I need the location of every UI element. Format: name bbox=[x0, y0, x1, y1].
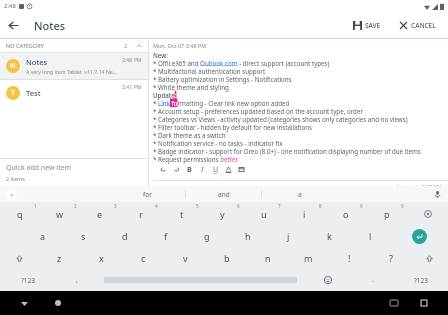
staticText: Notes bbox=[26, 57, 48, 67]
staticText: h bbox=[245, 230, 251, 242]
staticText: 5 bbox=[196, 203, 199, 209]
button[interactable]: g bbox=[186, 225, 227, 247]
button[interactable]: ? bbox=[370, 247, 411, 269]
staticText: Quick add new item bbox=[6, 163, 72, 173]
staticText: 2:48 PM bbox=[122, 56, 142, 63]
button[interactable]: n bbox=[247, 247, 288, 269]
button[interactable]: Italic bbox=[196, 163, 209, 176]
button[interactable]: c bbox=[122, 247, 164, 269]
button[interactable]: u bbox=[243, 202, 284, 225]
staticText: y bbox=[220, 208, 225, 220]
staticText: A very long item Tablet v11.7.14 New * O… bbox=[26, 68, 119, 75]
staticText: 4 bbox=[155, 203, 158, 209]
staticText: , bbox=[76, 275, 78, 285]
button[interactable]: Bold bbox=[183, 163, 196, 176]
staticText: f bbox=[164, 230, 168, 242]
staticText: 2:41 PM bbox=[122, 83, 142, 90]
staticText: * Categories vs Views - activity updated… bbox=[153, 115, 408, 123]
button[interactable]: Undo bbox=[157, 163, 170, 176]
button[interactable]: Emoji bbox=[304, 269, 352, 291]
button[interactable]: w bbox=[40, 202, 80, 225]
staticText: Test bbox=[26, 88, 41, 98]
button[interactable]: a bbox=[22, 225, 63, 247]
staticText: 0 bbox=[401, 203, 404, 209]
button[interactable]: Keyboard bbox=[384, 293, 404, 313]
button[interactable]: l bbox=[350, 225, 391, 247]
button[interactable]: Voice input bbox=[431, 188, 443, 200]
button[interactable]: for bbox=[110, 186, 185, 202]
button[interactable]: ?123 bbox=[393, 269, 448, 291]
staticText: 8 bbox=[319, 203, 322, 209]
staticText: i bbox=[303, 208, 306, 220]
button[interactable]: Shift bbox=[411, 247, 448, 269]
staticText: r bbox=[139, 208, 143, 220]
staticText: * Link formatting - Clear link new optio… bbox=[153, 99, 290, 107]
button[interactable]: Back bbox=[0, 12, 26, 38]
button[interactable]: Recents bbox=[414, 293, 434, 313]
button[interactable]: ?123 bbox=[0, 269, 56, 291]
button[interactable]: SAVE bbox=[347, 17, 387, 34]
staticText: . bbox=[372, 275, 374, 285]
staticText: b bbox=[224, 252, 230, 264]
button[interactable]: r bbox=[120, 202, 161, 225]
staticText: I bbox=[201, 165, 204, 175]
button[interactable]: h bbox=[227, 225, 268, 247]
staticText: x bbox=[99, 252, 104, 264]
button[interactable]: v bbox=[164, 247, 206, 269]
staticText: Notes bbox=[34, 18, 66, 33]
button[interactable]: y bbox=[202, 202, 243, 225]
button[interactable]: CANCEL bbox=[393, 17, 442, 34]
staticText: t bbox=[180, 208, 184, 220]
button[interactable]: Back bbox=[14, 293, 34, 313]
button[interactable]: Home bbox=[48, 293, 68, 313]
button[interactable]: Underline bbox=[209, 163, 222, 176]
button[interactable]: d bbox=[104, 225, 145, 247]
button[interactable]: Text color bbox=[222, 163, 235, 176]
button[interactable]: q bbox=[0, 202, 40, 225]
button[interactable]: p bbox=[366, 202, 407, 225]
button[interactable]: i bbox=[284, 202, 325, 225]
button[interactable]: k bbox=[309, 225, 350, 247]
staticText: Last sync: 2:48 PM bbox=[397, 183, 442, 186]
staticText: * Battery optimization in Settings - Not… bbox=[153, 75, 292, 83]
button[interactable]: x bbox=[80, 247, 122, 269]
button[interactable]: Quick add new item bbox=[0, 159, 148, 186]
button[interactable]: e bbox=[80, 202, 120, 225]
button[interactable]: a bbox=[262, 186, 337, 202]
staticText: 7 bbox=[278, 203, 281, 209]
button[interactable]: T bbox=[0, 80, 148, 106]
button[interactable]: Shift bbox=[0, 247, 38, 269]
staticText: CANCEL bbox=[411, 21, 436, 30]
button[interactable]: Redo bbox=[170, 163, 183, 176]
staticText: j bbox=[287, 230, 290, 242]
staticText: c bbox=[141, 252, 146, 264]
button[interactable]: m bbox=[288, 247, 329, 269]
staticText: B bbox=[187, 165, 192, 175]
button[interactable]: o bbox=[325, 202, 366, 225]
button[interactable]: Insert bbox=[235, 163, 248, 176]
button[interactable]: Enter bbox=[412, 229, 427, 244]
button[interactable]: Space bbox=[97, 269, 304, 291]
staticText: Mon, Oct 07 2:48 PM bbox=[153, 42, 207, 49]
button[interactable]: j bbox=[268, 225, 309, 247]
button[interactable]: Backspace bbox=[407, 202, 448, 225]
button[interactable]: ! bbox=[329, 247, 370, 269]
button[interactable]: z bbox=[38, 247, 80, 269]
staticText: 3 bbox=[114, 203, 117, 209]
staticText: p bbox=[384, 208, 390, 220]
button[interactable]: f bbox=[145, 225, 186, 247]
button[interactable]: NO CATEGORY bbox=[0, 39, 148, 52]
staticText: > bbox=[10, 191, 14, 199]
button[interactable]: b bbox=[206, 247, 247, 269]
button[interactable]: and bbox=[186, 186, 261, 202]
button[interactable]: t bbox=[161, 202, 202, 225]
button[interactable]: Expand bbox=[6, 189, 17, 200]
staticText: NO CATEGORY bbox=[6, 42, 44, 49]
staticText: u bbox=[261, 208, 267, 220]
staticText: Update: bbox=[153, 91, 177, 99]
button[interactable]: N bbox=[0, 53, 148, 79]
staticText: l bbox=[369, 230, 372, 242]
button[interactable]: s bbox=[63, 225, 104, 247]
